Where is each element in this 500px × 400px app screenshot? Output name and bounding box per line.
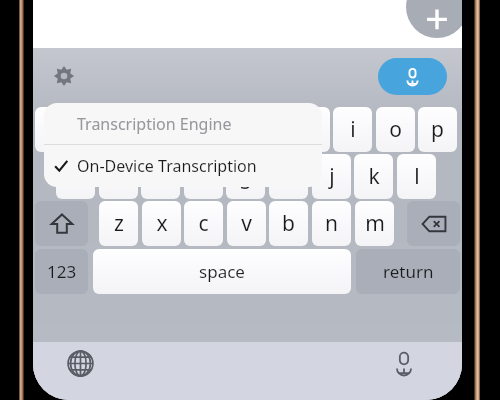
staticText: e	[134, 115, 146, 144]
button[interactable]: z	[99, 201, 138, 246]
button[interactable]: o	[376, 107, 415, 152]
staticText: c	[198, 209, 209, 238]
staticText: x	[156, 209, 168, 238]
button[interactable]: d	[141, 154, 180, 199]
staticText: l	[414, 162, 420, 191]
button[interactable]: t	[205, 107, 244, 152]
button[interactable]: Change keyboard language	[64, 347, 96, 379]
button[interactable]: l	[397, 154, 436, 199]
button[interactable]: a	[56, 154, 95, 199]
staticText: Transcription Engine	[77, 113, 232, 135]
staticText: d	[154, 162, 167, 191]
button[interactable]: x	[142, 201, 181, 246]
button[interactable]: m	[355, 201, 394, 246]
button[interactable]: p	[418, 107, 457, 152]
button[interactable]: Add	[406, 0, 462, 38]
button[interactable]: h	[269, 154, 308, 199]
staticText: g	[239, 162, 252, 191]
button[interactable]: Voice input	[388, 347, 420, 379]
button[interactable]: Settings	[51, 63, 77, 89]
button[interactable]: q	[35, 107, 74, 152]
staticText: v	[241, 209, 252, 238]
staticText: n	[325, 209, 338, 238]
button[interactable]: s	[99, 154, 138, 199]
staticText: a	[70, 162, 82, 191]
button[interactable]: n	[312, 201, 351, 246]
staticText: r	[178, 115, 187, 144]
button[interactable]: space	[93, 249, 351, 294]
button[interactable]: u	[291, 107, 330, 152]
button[interactable]: g	[226, 154, 265, 199]
staticText: o	[389, 115, 402, 144]
staticText: i	[350, 115, 356, 144]
staticText: b	[282, 209, 295, 238]
staticText: return	[383, 260, 434, 283]
button[interactable]	[407, 201, 460, 246]
staticText: w	[89, 115, 106, 144]
button[interactable]: Transcription Engine	[44, 103, 322, 144]
staticText: f	[200, 162, 208, 191]
staticText: 123	[47, 260, 77, 283]
staticText: j	[329, 162, 335, 191]
button[interactable]: k	[354, 154, 393, 199]
staticText: space	[199, 260, 245, 283]
staticText: s	[113, 162, 124, 191]
button[interactable]: On-Device Transcription	[44, 145, 322, 187]
staticText: k	[368, 162, 380, 191]
button[interactable]: Dictate	[378, 58, 447, 95]
staticText: t	[221, 115, 229, 144]
button[interactable]: e	[120, 107, 159, 152]
button[interactable]: 123	[35, 249, 88, 294]
button[interactable]: return	[356, 249, 460, 294]
button[interactable]: b	[269, 201, 308, 246]
staticText: z	[114, 209, 124, 238]
staticText: m	[365, 209, 385, 238]
button[interactable]: f	[184, 154, 223, 199]
button[interactable]: c	[184, 201, 223, 246]
button[interactable]: r	[163, 107, 202, 152]
button[interactable]: v	[227, 201, 266, 246]
button[interactable]: j	[312, 154, 351, 199]
button[interactable]: w	[78, 107, 117, 152]
staticText: On-Device Transcription	[77, 155, 257, 177]
button[interactable]: i	[333, 107, 372, 152]
button[interactable]: y	[248, 107, 287, 152]
staticText: p	[431, 115, 444, 144]
button[interactable]	[35, 201, 88, 246]
